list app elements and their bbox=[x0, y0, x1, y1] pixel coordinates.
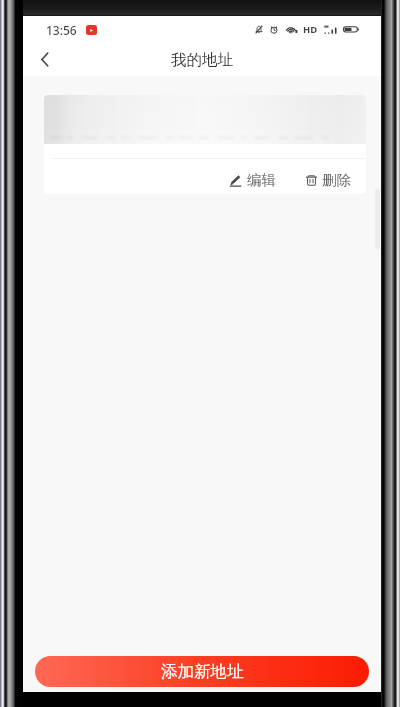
staticText: 13:56 bbox=[46, 22, 77, 38]
button[interactable]: 删除 bbox=[304, 167, 353, 193]
staticText: HD bbox=[303, 23, 318, 36]
button[interactable]: 添加新地址 bbox=[35, 656, 369, 687]
button[interactable]: 编辑 bbox=[44, 95, 366, 194]
button[interactable]: 编辑 bbox=[227, 167, 278, 193]
staticText: 添加新地址 bbox=[161, 661, 244, 682]
staticText: 删除 bbox=[322, 171, 351, 189]
staticText: 编辑 bbox=[247, 171, 276, 189]
staticText: 我的地址 bbox=[171, 50, 233, 70]
button[interactable]: Back bbox=[27, 43, 63, 76]
